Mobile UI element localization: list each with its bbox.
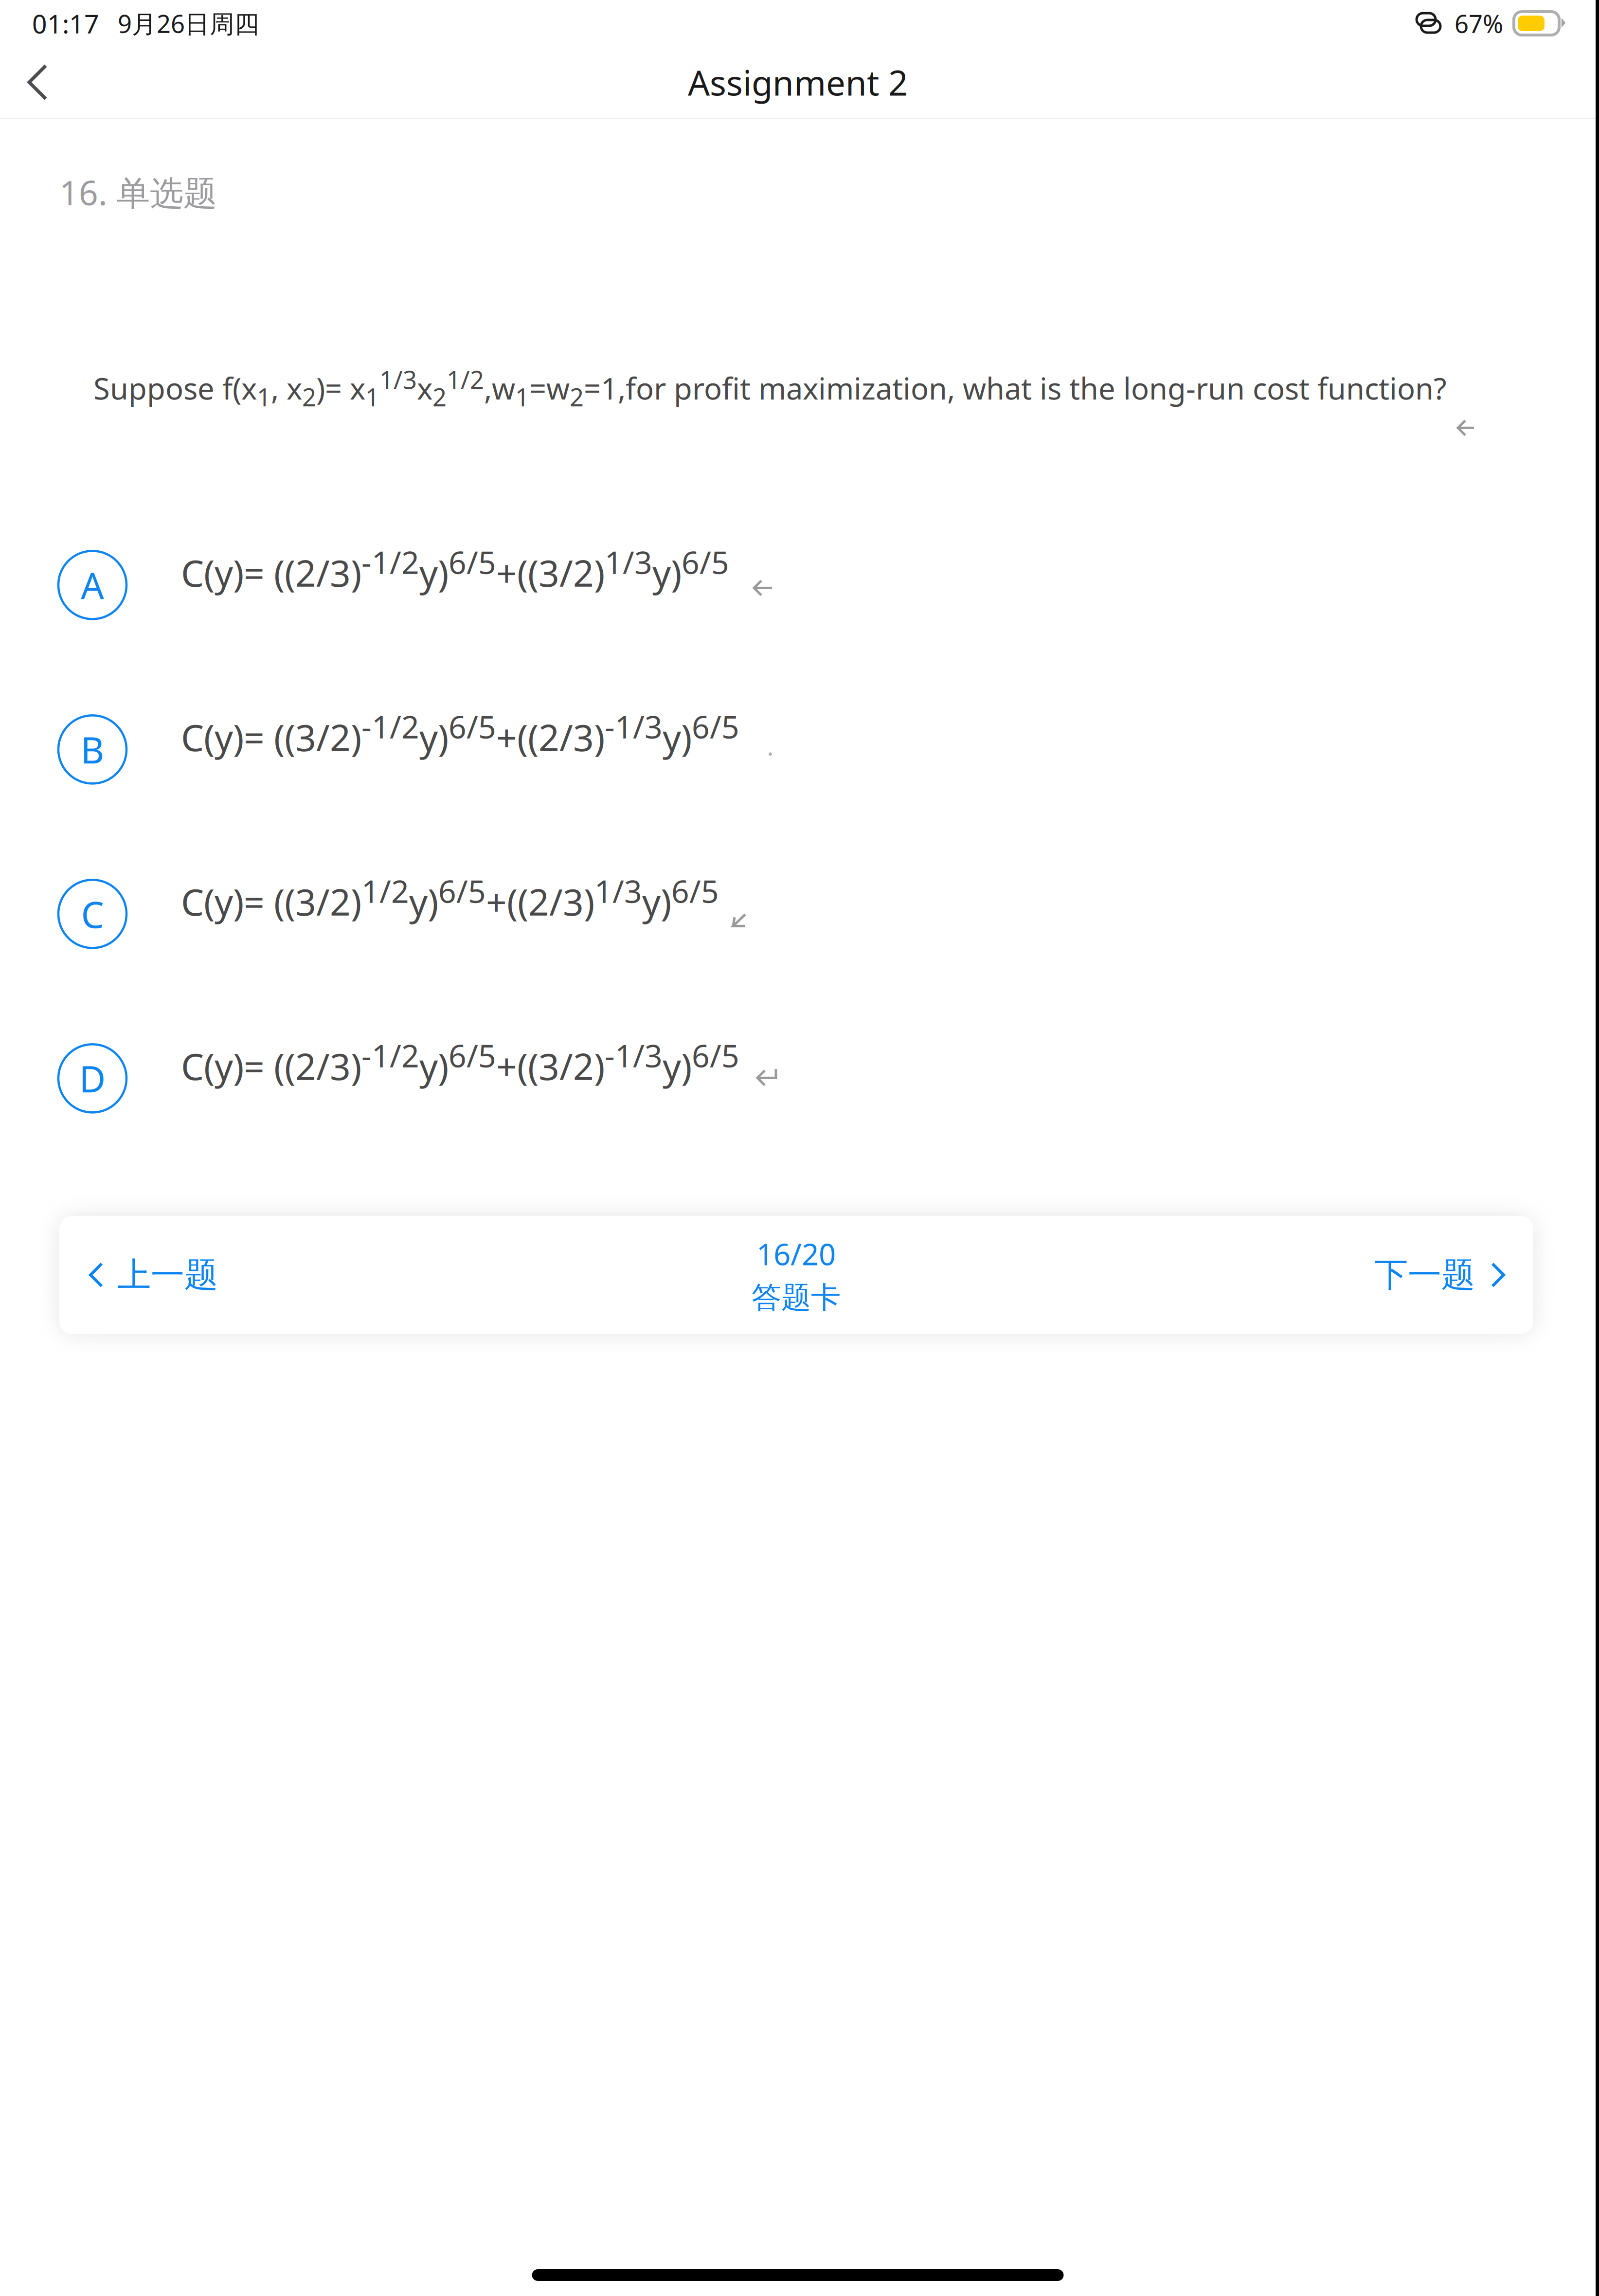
staticText: D <box>79 1054 106 1103</box>
staticText: C <box>81 890 104 938</box>
staticText: A <box>81 561 104 609</box>
button[interactable]: Back <box>0 52 69 112</box>
staticText: C(y)= ((3/2)-1/2y)6/5+((2/3)-1/3y)6/5 <box>181 706 739 761</box>
button[interactable]: 上一题 <box>59 1225 237 1325</box>
button[interactable]: 下一题 <box>1355 1225 1533 1325</box>
staticText: 下一题 <box>1374 1254 1475 1296</box>
button[interactable]: A <box>0 526 1596 631</box>
button[interactable]: B <box>0 691 1596 796</box>
staticText: 16. 单选题 <box>59 170 217 215</box>
staticText: Suppose f(x1, x2)= x11/3x21/2,w1=w2=1,fo… <box>93 363 1447 413</box>
staticText: 67% <box>1455 7 1503 40</box>
staticText: 16/20 <box>756 1234 836 1273</box>
staticText: 9月26日周四 <box>118 7 259 40</box>
staticText: 01:17 <box>32 6 99 41</box>
button[interactable]: C <box>0 855 1596 960</box>
staticText: Assignment 2 <box>688 59 908 105</box>
button[interactable]: D <box>0 1020 1596 1125</box>
staticText: C(y)= ((2/3)-1/2y)6/5+((3/2)-1/3y)6/5 <box>181 1035 739 1090</box>
staticText: 答题卡 <box>752 1279 841 1316</box>
staticText: 上一题 <box>117 1254 218 1296</box>
button[interactable]: 16/20 <box>732 1217 860 1333</box>
staticText: C(y)= ((2/3)-1/2y)6/5+((3/2)1/3y)6/5 <box>181 541 729 597</box>
staticText: B <box>81 725 104 774</box>
staticText: C(y)= ((3/2)1/2y)6/5+((2/3)1/3y)6/5 <box>181 870 719 926</box>
